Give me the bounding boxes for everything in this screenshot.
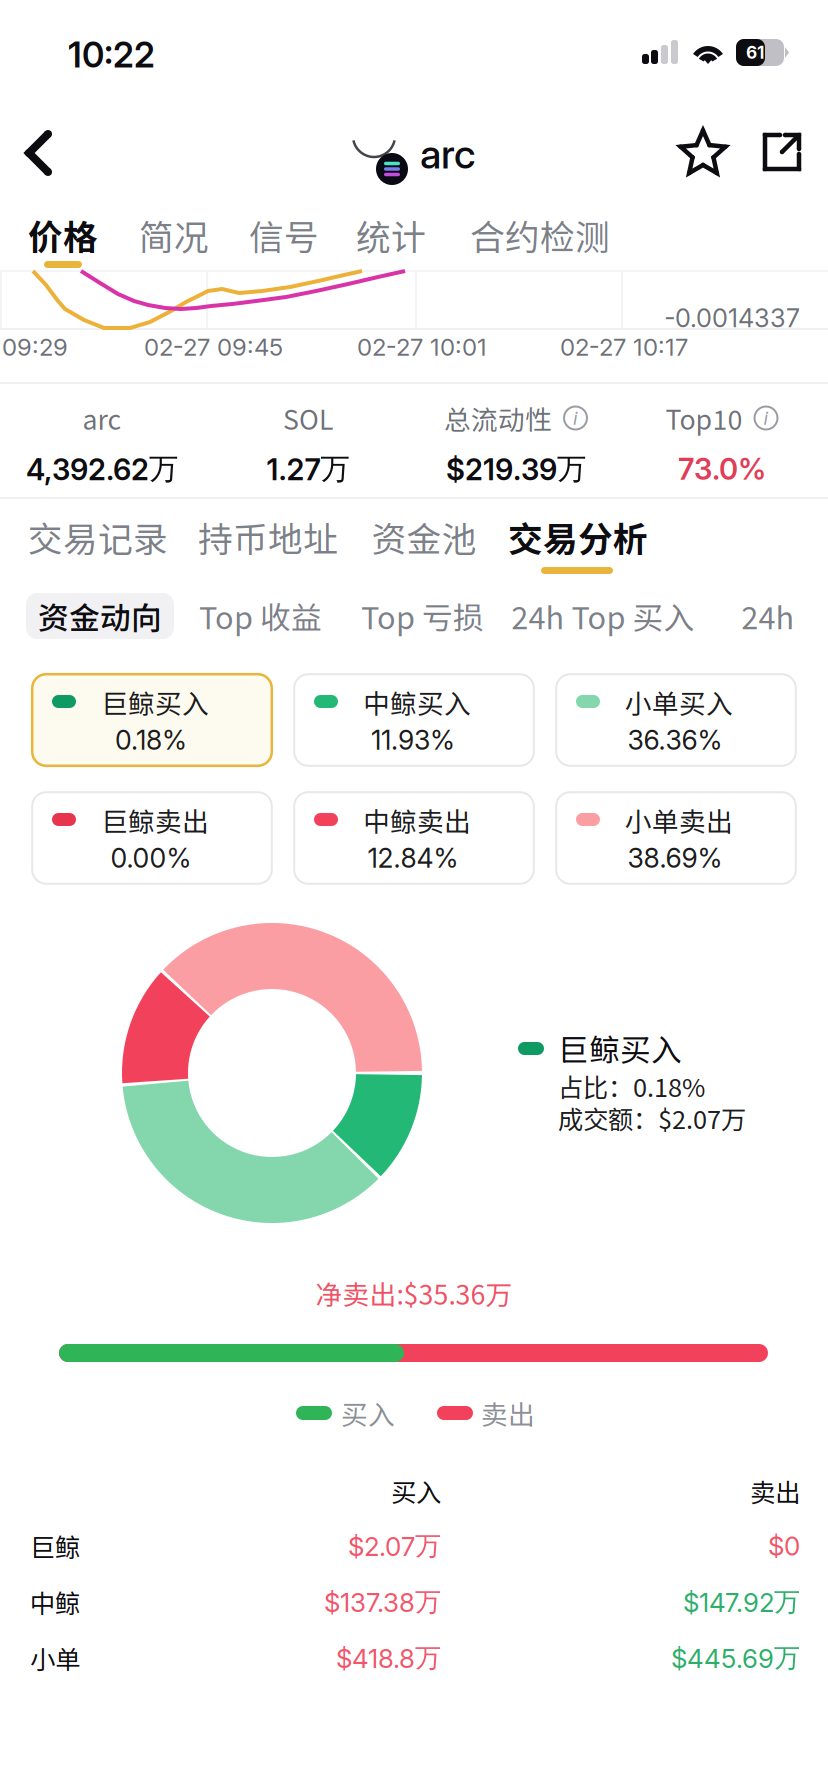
button[interactable]: 信号 <box>0 0 94 62</box>
staticText: 0.00% <box>110 842 191 874</box>
staticText: $2.07万 <box>348 1530 441 1562</box>
staticText: 09:29 <box>2 332 68 361</box>
button[interactable]: 简况 <box>0 0 94 62</box>
staticText: 中鲸卖出 <box>363 801 471 839</box>
button[interactable]: 持币地址 <box>0 0 166 64</box>
button[interactable]: 巨鲸买入 <box>0 0 242 94</box>
staticText: 交易记录 <box>28 512 168 562</box>
staticText: 02-27 10:01 <box>357 332 487 361</box>
button[interactable]: 中鲸卖出 <box>0 0 242 94</box>
staticText: 信号 <box>249 210 319 260</box>
staticText: 36.36% <box>627 724 722 756</box>
staticText: 统计 <box>356 210 426 260</box>
staticText: $418.8万 <box>336 1642 441 1674</box>
button[interactable]: 巨鲸卖出 <box>0 0 242 94</box>
staticText: 61 <box>746 42 764 63</box>
staticText: SOL <box>283 399 333 437</box>
button[interactable]: 统计 <box>0 0 94 62</box>
button[interactable]: Top 亏损 <box>0 0 145 46</box>
staticText: i <box>763 407 768 429</box>
button[interactable]: 价格 <box>0 0 98 62</box>
staticText: 中鲸 <box>30 1584 80 1620</box>
button[interactable]: 小单卖出 <box>0 0 242 94</box>
staticText: 小单 <box>30 1640 80 1676</box>
staticText: 小单买入 <box>625 683 733 721</box>
staticText: 占比：0.18% <box>558 1068 705 1104</box>
staticText: 巨鲸买入 <box>558 1026 682 1070</box>
button[interactable]: 交易分析 <box>0 0 168 64</box>
button[interactable]: 交易记录 <box>0 0 166 64</box>
staticText: arc <box>420 130 476 178</box>
staticText: 价格 <box>28 210 98 260</box>
staticText: 简况 <box>139 210 209 260</box>
staticText: $147.92万 <box>683 1586 800 1618</box>
staticText: 73.0% <box>678 451 766 487</box>
button[interactable]: 资金池 <box>0 0 132 64</box>
staticText: 成交额：$2.07万 <box>558 1100 746 1136</box>
staticText: 巨鲸卖出 <box>101 801 209 839</box>
staticText: i <box>573 407 578 429</box>
staticText: 1.27万 <box>266 450 349 487</box>
staticText: Top10 <box>665 399 742 437</box>
staticText: 11.93% <box>371 724 455 756</box>
staticText: 巨鲸买入 <box>101 683 209 721</box>
staticText: 24h <box>741 594 794 638</box>
button[interactable]: Back <box>0 0 92 86</box>
staticText: $445.69万 <box>671 1642 800 1674</box>
staticText: Top 收益 <box>199 594 322 638</box>
staticText: 净卖出:$35.36万 <box>315 1274 512 1312</box>
staticText: 中鲸买入 <box>363 683 471 721</box>
staticText: 持币地址 <box>198 512 338 562</box>
staticText: 买入 <box>341 1394 395 1432</box>
staticText: 24h Top 买入 <box>511 594 694 638</box>
staticText: 38.69% <box>627 842 722 874</box>
staticText: 卖出 <box>481 1394 535 1432</box>
staticText: arc <box>82 399 121 437</box>
button[interactable]: 24h <box>0 0 82 46</box>
staticText: 资金池 <box>371 512 476 562</box>
staticText: 资金动向 <box>38 594 162 638</box>
button[interactable]: 合约检测 <box>0 0 166 62</box>
button[interactable]: Top 收益 <box>0 0 145 46</box>
staticText: $0 <box>768 1530 800 1562</box>
staticText: 02-27 09:45 <box>144 332 283 361</box>
staticText: 4,392.62万 <box>26 450 178 487</box>
staticText: 10:22 <box>68 34 155 76</box>
staticText: 小单卖出 <box>625 801 733 839</box>
button[interactable]: 24h Top 买入 <box>0 0 196 46</box>
staticText: Top 亏损 <box>361 594 484 638</box>
staticText: 买入 <box>391 1473 441 1509</box>
button[interactable]: 中鲸买入 <box>0 0 242 94</box>
staticText: 02-27 10:17 <box>560 332 688 361</box>
staticText: 巨鲸 <box>30 1528 80 1564</box>
button[interactable]: Favorite <box>0 0 88 88</box>
staticText: 交易分析 <box>508 512 648 562</box>
button[interactable]: 资金动向 <box>0 0 148 46</box>
staticText: 12.84% <box>367 842 458 874</box>
staticText: 卖出 <box>750 1473 800 1509</box>
staticText: 总流动性 <box>444 399 552 437</box>
staticText: $137.38万 <box>324 1586 441 1618</box>
button[interactable]: Share <box>0 0 88 88</box>
staticText: -0.0014337 <box>664 303 800 333</box>
button[interactable]: 小单买入 <box>0 0 242 94</box>
staticText: $219.39万 <box>446 450 586 487</box>
staticText: 合约检测 <box>470 210 610 260</box>
staticText: 0.18% <box>115 724 187 756</box>
